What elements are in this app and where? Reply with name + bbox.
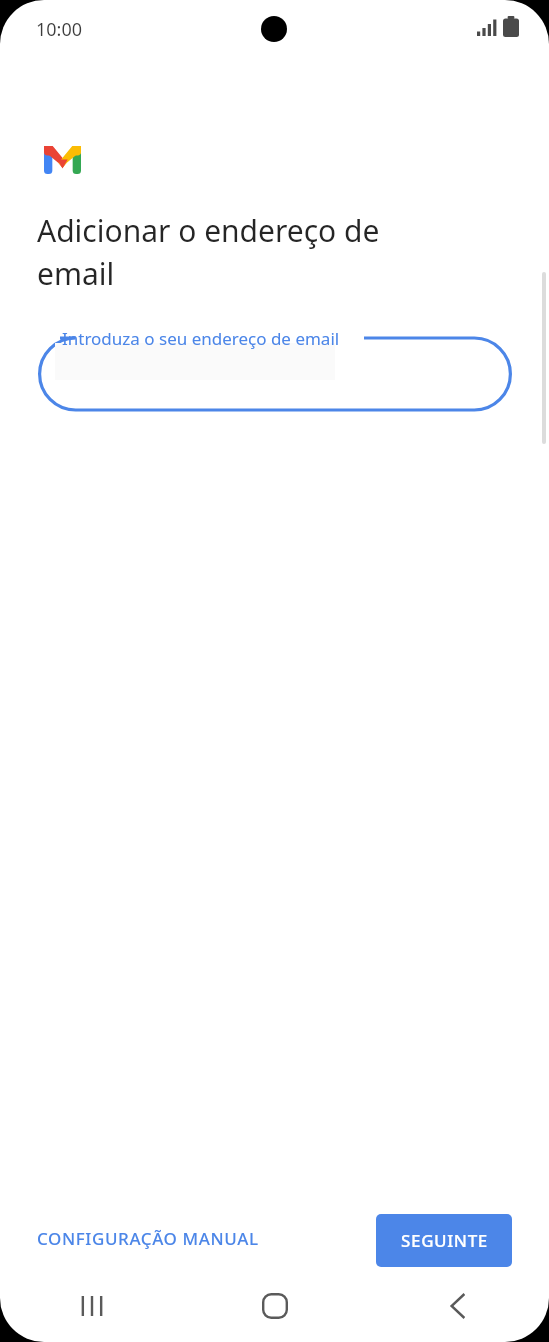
button[interactable]: Introduza o seu endereço de email xyxy=(38,322,512,412)
button[interactable]: Home xyxy=(183,1270,366,1342)
staticText: CONFIGURAÇÃO MANUAL xyxy=(37,1227,259,1250)
button[interactable]: Back xyxy=(366,1270,549,1342)
staticText: SEGUINTE xyxy=(401,1229,488,1252)
staticText: 10:00 xyxy=(36,17,83,42)
button[interactable]: CONFIGURAÇÃO MANUAL xyxy=(25,1210,271,1266)
staticText: Adicionar o endereço de email xyxy=(37,210,449,294)
button[interactable]: SEGUINTE xyxy=(376,1214,512,1267)
staticText: Introduza o seu endereço de email xyxy=(62,327,340,350)
button[interactable]: Recent apps xyxy=(0,1270,183,1342)
